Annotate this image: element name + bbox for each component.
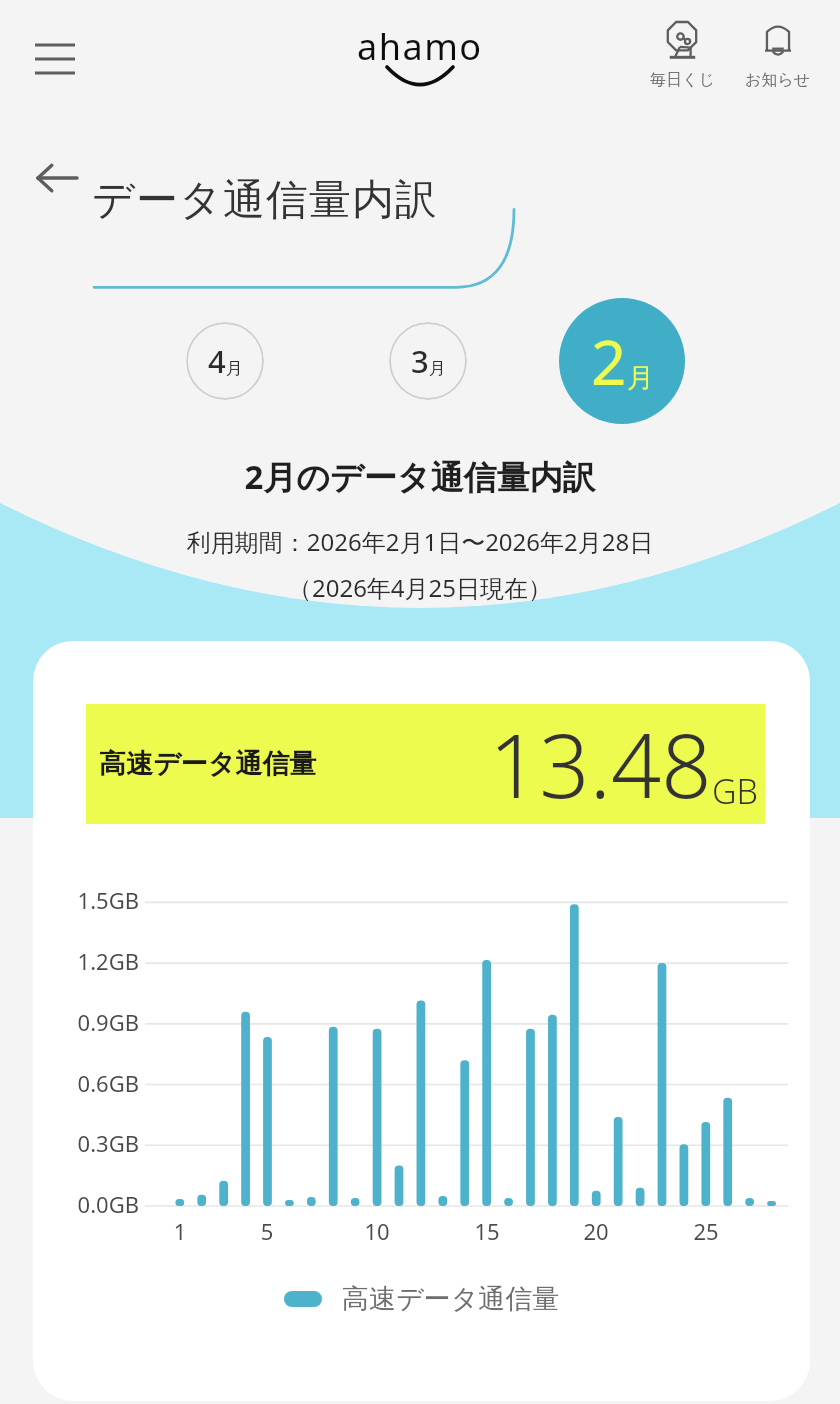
staticText: ahamo [357,22,483,71]
staticText: 13.48 [489,704,712,824]
staticText: 月 [627,361,654,395]
button[interactable]: Menu [22,26,88,92]
staticText: 1.5GB [41,885,139,915]
button[interactable]: Back [20,142,92,214]
staticText: 2月のデータ通信量内訳 [0,454,840,499]
button[interactable]: お知らせ [730,12,826,94]
staticText: 1 [158,1216,202,1246]
staticText: 5 [245,1216,289,1246]
button[interactable]: 4 [186,322,264,400]
staticText: （2026年4月25日現在） [0,571,840,604]
staticText: 2 [591,319,627,403]
staticText: 0.6GB [41,1068,139,1098]
staticText: 0.0GB [41,1189,139,1219]
staticText: 月 [429,358,446,379]
staticText: 10 [355,1216,399,1246]
staticText: 毎日くじ [650,70,715,90]
staticText: 20 [574,1216,618,1246]
button[interactable]: ahamo [349,22,491,87]
staticText: 利用期間：2026年2月1日〜2026年2月28日 [0,525,840,558]
staticText: 3 [411,340,429,382]
staticText: 高速データ通信量 [99,747,317,781]
staticText: 1.2GB [41,946,139,976]
staticText: 25 [684,1216,728,1246]
staticText: データ通信量内訳 [92,174,438,227]
staticText: GB [712,768,759,814]
button[interactable]: 高速データ通信量 [86,704,765,824]
staticText: 月 [226,358,243,379]
staticText: 15 [465,1216,509,1246]
button[interactable]: 毎日くじ [634,12,730,94]
button[interactable]: 3 [389,322,467,400]
staticText: 0.9GB [41,1007,139,1037]
button[interactable]: 2 [559,298,685,424]
staticText: 0.3GB [41,1128,139,1158]
staticText: 4 [208,340,226,382]
staticText: お知らせ [745,70,811,90]
staticText: 高速データ通信量 [342,1282,560,1316]
